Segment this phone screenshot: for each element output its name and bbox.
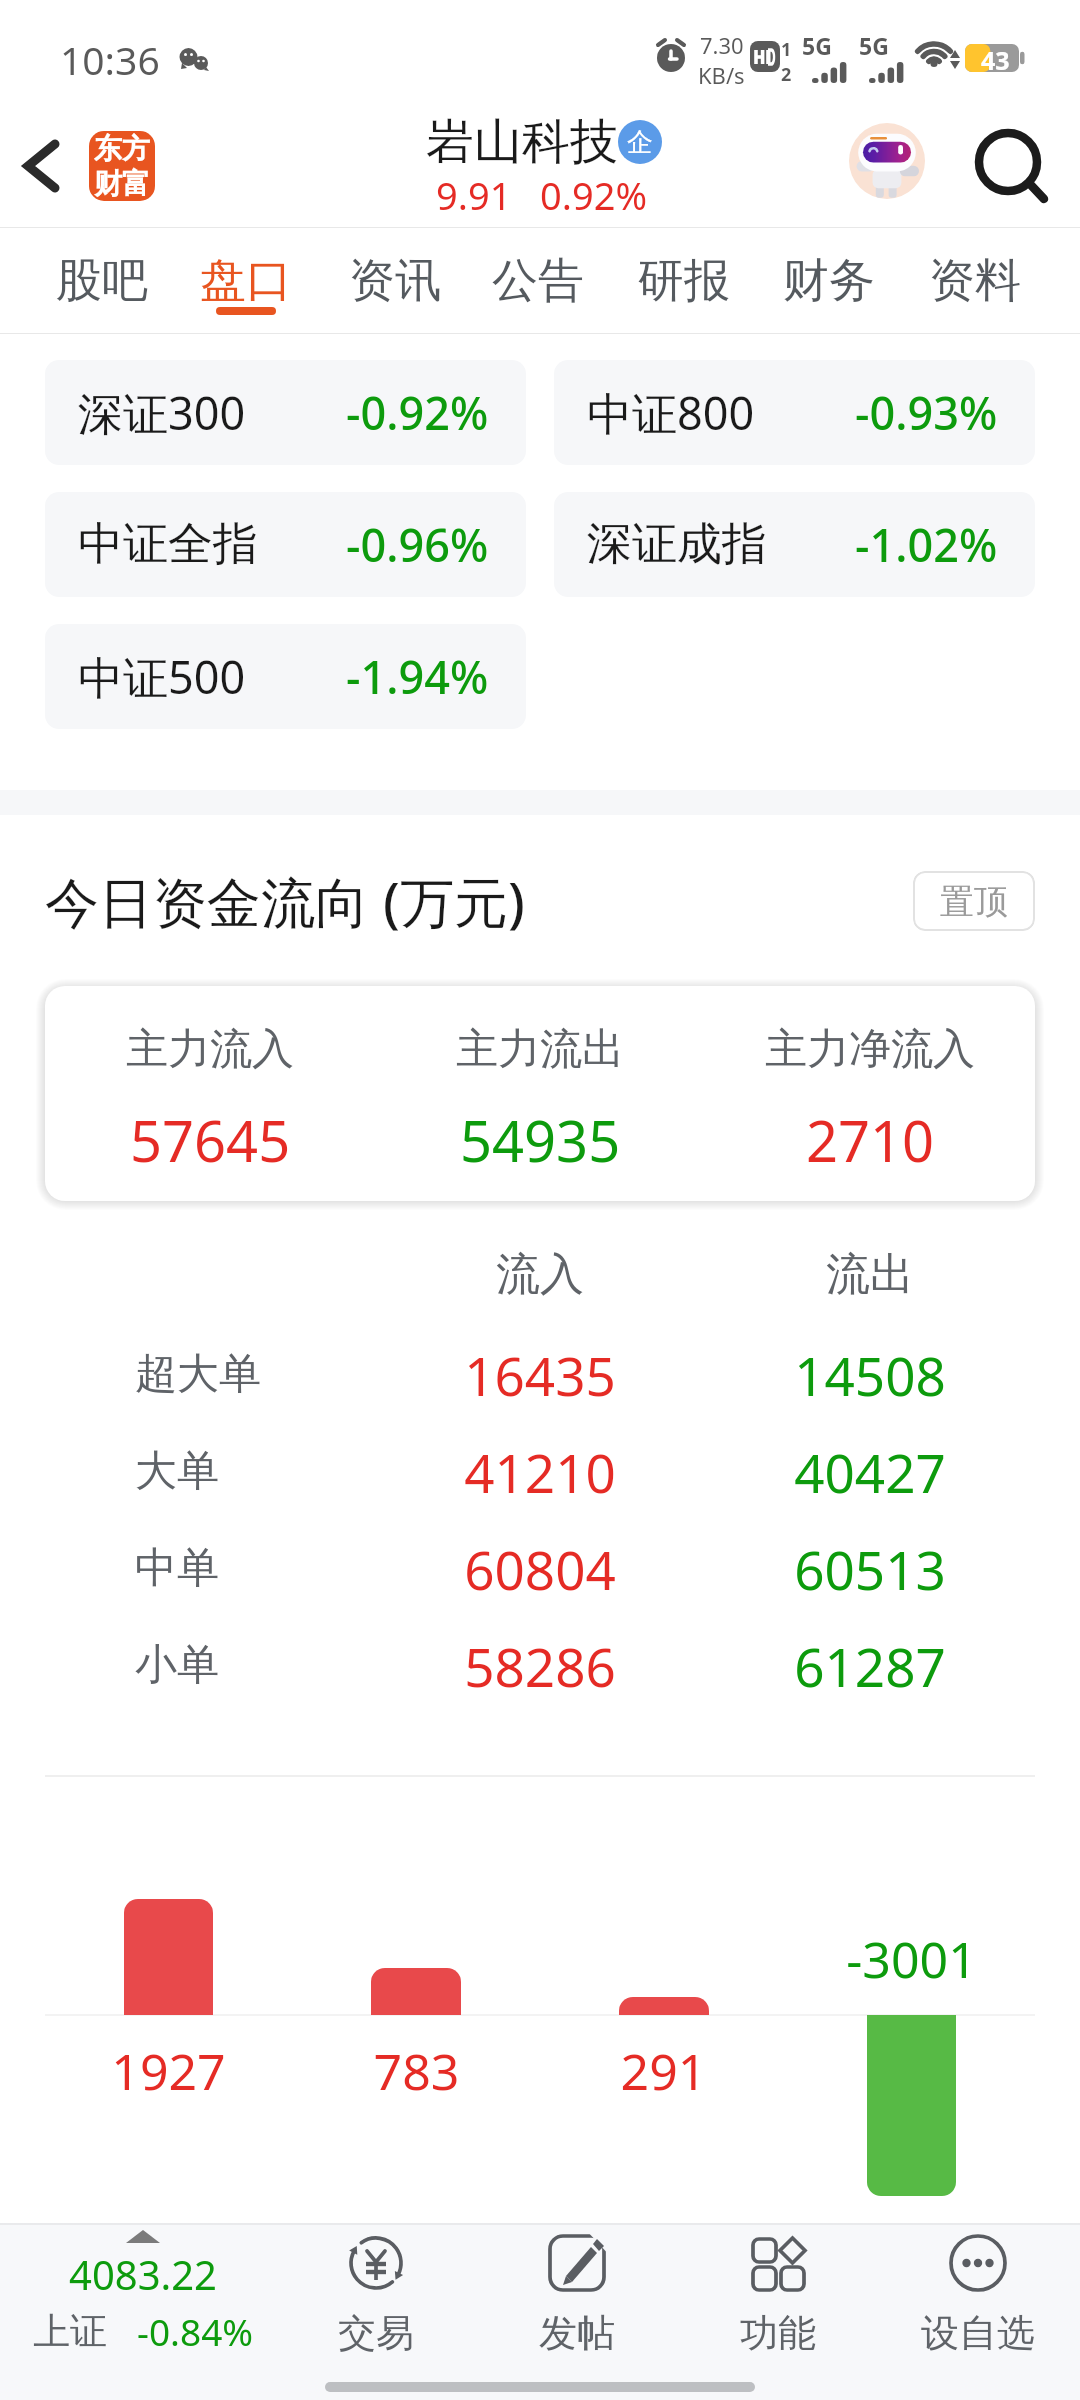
staticText: 中证500 xyxy=(78,646,246,707)
staticText: 40427 xyxy=(705,1436,1035,1508)
staticText: 58286 xyxy=(375,1630,705,1702)
button[interactable]: 盘口 xyxy=(156,228,336,333)
staticText: 盘口 xyxy=(200,252,292,310)
staticText: 2 xyxy=(781,62,792,87)
staticText: -1.94% xyxy=(346,646,489,707)
button[interactable]: 深证300 xyxy=(45,360,526,465)
staticText: 主力流入 xyxy=(126,1023,294,1076)
staticText: 功能 xyxy=(740,2309,816,2357)
staticText: -0.92% xyxy=(346,382,489,443)
staticText: 公告 xyxy=(492,252,584,310)
button[interactable]: 研报 xyxy=(594,228,774,333)
staticText: 中证全指 xyxy=(78,516,258,573)
staticText: 资讯 xyxy=(349,252,441,310)
staticText: 东方 xyxy=(94,131,150,166)
staticText: 57645 xyxy=(130,1102,291,1178)
button[interactable]: 资讯 xyxy=(305,228,485,333)
button[interactable]: Search xyxy=(965,120,1059,214)
staticText: 中证800 xyxy=(587,382,755,443)
staticText: 研报 xyxy=(638,252,730,310)
button[interactable]: 交易 xyxy=(296,2231,456,2357)
staticText: 0.92% xyxy=(540,169,647,221)
staticText: 置顶 xyxy=(940,880,1008,923)
button[interactable]: 资料 xyxy=(885,228,1065,333)
staticText: 9.91 xyxy=(436,169,512,221)
staticText: 交易 xyxy=(338,2309,414,2357)
staticText: KB/s xyxy=(698,60,745,90)
button[interactable]: 中证800 xyxy=(554,360,1035,465)
staticText: 财富 xyxy=(94,166,150,201)
staticText: 小单 xyxy=(135,1639,219,1692)
staticText: 14508 xyxy=(705,1339,1035,1411)
staticText: 60804 xyxy=(375,1533,705,1605)
staticText: 43 xyxy=(981,43,1010,71)
button[interactable]: 股吧 xyxy=(12,228,192,333)
staticText: 41210 xyxy=(375,1436,705,1508)
button[interactable]: 功能 xyxy=(698,2231,858,2357)
staticText: 54935 xyxy=(460,1102,621,1178)
staticText: 783 xyxy=(340,2037,493,2105)
staticText: 2710 xyxy=(806,1102,935,1178)
staticText: 61287 xyxy=(705,1630,1035,1702)
staticText: 流入 xyxy=(375,1247,705,1302)
staticText: 超大单 xyxy=(135,1348,261,1401)
button[interactable]: 中证500 xyxy=(45,624,526,729)
button[interactable]: 中证全指 xyxy=(45,492,526,597)
staticText: 发帖 xyxy=(539,2309,615,2357)
staticText: 设自选 xyxy=(921,2309,1035,2357)
button[interactable]: 发帖 xyxy=(497,2231,657,2357)
staticText: 10:36 xyxy=(60,33,160,86)
staticText: 财务 xyxy=(783,252,875,310)
button[interactable]: 公告 xyxy=(448,228,628,333)
button[interactable]: 财务 xyxy=(739,228,919,333)
staticText: 主力流出 xyxy=(456,1023,624,1076)
button[interactable]: Back xyxy=(5,127,83,205)
button[interactable]: AI assistant xyxy=(841,115,933,207)
staticText: 4083.22 xyxy=(69,2247,217,2301)
staticText: 资料 xyxy=(929,252,1021,310)
staticText: 股吧 xyxy=(56,252,148,310)
staticText: -0.84% xyxy=(137,2306,254,2356)
staticText: 1927 xyxy=(92,2037,245,2105)
staticText: -0.93% xyxy=(855,382,998,443)
staticText: 7.30 xyxy=(700,30,744,60)
button[interactable]: 置顶 xyxy=(913,871,1035,931)
button[interactable]: 4083.22 xyxy=(0,2229,298,2356)
staticText: 深证成指 xyxy=(587,516,767,573)
staticText: 主力净流入 xyxy=(765,1023,975,1076)
staticText: 5G xyxy=(802,30,832,61)
staticText: 60513 xyxy=(705,1533,1035,1605)
staticText: 16435 xyxy=(375,1339,705,1411)
button[interactable]: 深证成指 xyxy=(554,492,1035,597)
staticText: 上证 xyxy=(33,2308,107,2355)
staticText: 291 xyxy=(587,2037,740,2105)
staticText: 流出 xyxy=(705,1247,1035,1302)
staticText: 企 xyxy=(627,126,653,159)
staticText: 大单 xyxy=(135,1445,219,1498)
staticText: -1.02% xyxy=(855,514,998,575)
staticText: 今日资金流向 (万元) xyxy=(45,864,525,938)
staticText: 5G xyxy=(859,30,889,61)
staticText: 1 xyxy=(781,37,792,62)
staticText: 岩山科技 xyxy=(426,112,618,172)
staticText: 深证300 xyxy=(78,382,246,443)
button[interactable]: East Money xyxy=(89,131,155,201)
button[interactable]: 设自选 xyxy=(898,2231,1058,2357)
staticText: -0.96% xyxy=(346,514,489,575)
staticText: 中单 xyxy=(135,1542,219,1595)
staticText: -3001 xyxy=(835,1925,988,1993)
